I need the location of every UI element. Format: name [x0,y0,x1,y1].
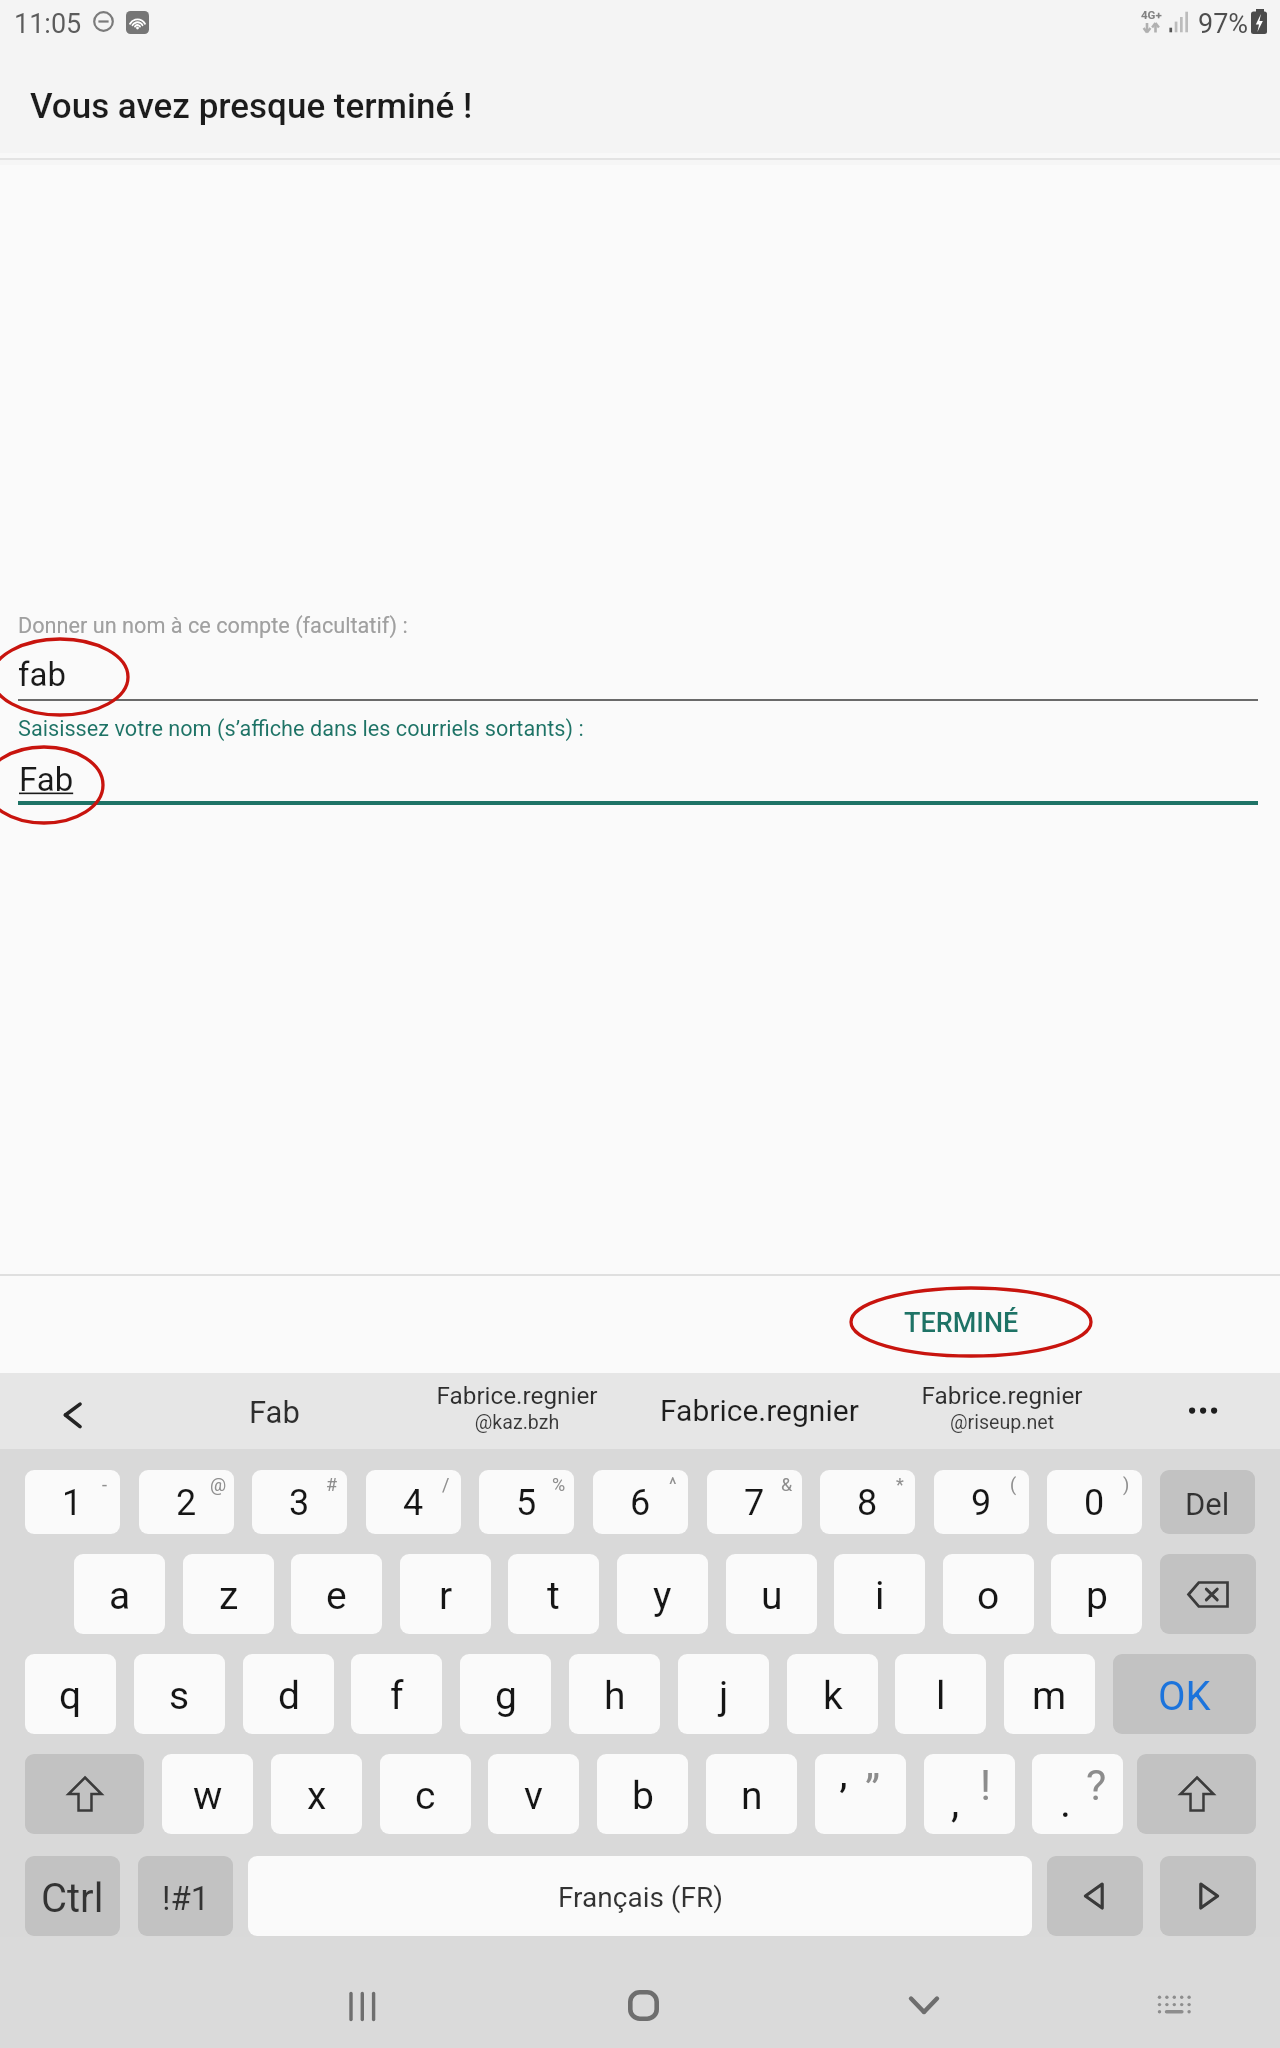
button[interactable]: Recent apps [302,1950,422,2048]
button[interactable]: Backspace [1160,1554,1256,1634]
button[interactable]: Shift [1137,1754,1256,1834]
staticText: Donner un nom à ce compte (facultatif) : [18,613,408,638]
button[interactable]: Vous avez presque terminé ! [0,57,1280,156]
button[interactable]: 1 [25,1470,120,1534]
button[interactable]: ’ [815,1754,906,1834]
button[interactable]: y [617,1554,708,1634]
staticText: 6 [630,1482,651,1524]
button[interactable]: 9 [934,1470,1029,1534]
staticText: n [741,1773,763,1819]
staticText: u [761,1573,783,1619]
staticText: 8 [857,1482,878,1524]
staticText: 11:05 [14,8,82,40]
staticText: @ [210,1474,227,1495]
button[interactable]: 8 [820,1470,915,1534]
button[interactable]: o [943,1554,1034,1634]
button[interactable]: k [787,1654,878,1734]
button[interactable]: p [1051,1554,1142,1634]
button[interactable]: l [895,1654,986,1734]
button[interactable]: Fabrice.regnier [436,1381,598,1443]
button[interactable]: s [134,1654,225,1734]
staticText: 4G+ [1141,8,1162,21]
button[interactable]: Shift [25,1754,144,1834]
button[interactable]: e [291,1554,382,1634]
button[interactable]: v [488,1754,579,1834]
button[interactable]: r [400,1554,491,1634]
button[interactable]: 4 [366,1470,461,1534]
button[interactable]: . [1032,1754,1123,1834]
button[interactable]: h [569,1654,660,1734]
button[interactable]: x [271,1754,362,1834]
staticText: d [278,1673,300,1719]
staticText: ( [1010,1474,1017,1495]
staticText: p [1086,1573,1108,1619]
staticText: e [326,1573,347,1619]
staticText: k [823,1673,843,1719]
button[interactable]: Hide keyboard [864,1950,984,2048]
button[interactable]: Previous suggestions [42,1379,102,1443]
staticText: 4 [403,1482,424,1524]
staticText: Saisissez votre nom (s’affiche dans les … [18,716,584,741]
button[interactable]: 7 [707,1470,802,1534]
button[interactable]: More options [1173,1379,1233,1443]
staticText: ! [980,1760,992,1810]
button[interactable]: 5 [479,1470,574,1534]
staticText: fab [18,655,66,694]
button[interactable]: Change keyboard [1114,1950,1234,2048]
button[interactable]: t [508,1554,599,1634]
staticText: 2 [176,1482,197,1524]
button[interactable]: Fab [205,1379,347,1443]
button[interactable]: d [243,1654,334,1734]
button[interactable]: 2 [139,1470,234,1534]
staticText: x [307,1773,327,1819]
staticText: i [875,1573,885,1619]
button[interactable]: q [25,1654,116,1734]
staticText: - [102,1474,107,1495]
button[interactable]: j [678,1654,769,1734]
staticText: Ctrl [41,1875,104,1922]
staticText: m [1032,1673,1067,1719]
button[interactable]: z [183,1554,274,1634]
button[interactable]: Fabrice.regnier [635,1379,885,1443]
button[interactable]: g [460,1654,551,1734]
staticText: & [781,1474,793,1495]
button[interactable]: w [162,1754,253,1834]
button[interactable]: b [597,1754,688,1834]
button[interactable]: TERMINÉ [866,1288,1056,1358]
staticText: o [977,1573,1000,1619]
button[interactable]: m [1004,1654,1095,1734]
button[interactable]: 6 [593,1470,688,1534]
button[interactable]: f [351,1654,442,1734]
button[interactable]: Home [583,1950,703,2048]
button[interactable]: i [834,1554,925,1634]
staticText: h [604,1673,626,1719]
staticText: c [415,1773,436,1819]
button[interactable]: Move cursor left [1047,1856,1143,1936]
staticText: ’ [839,1776,848,1825]
staticText: / [442,1474,450,1495]
button[interactable]: Del [1160,1470,1255,1534]
staticText: 3 [289,1482,310,1524]
button[interactable]: OK [1113,1654,1256,1734]
staticText: w [193,1773,223,1819]
button[interactable]: Fabrice.regnier [921,1381,1083,1443]
button[interactable]: 3 [252,1470,347,1534]
staticText: v [524,1773,543,1819]
button[interactable]: Français (FR) [248,1856,1032,1936]
staticText: Fab [19,760,74,799]
staticText: Fabrice.regnier [436,1381,598,1409]
button[interactable]: u [726,1554,817,1634]
button[interactable]: a [74,1554,165,1634]
staticText: g [495,1673,517,1719]
button[interactable]: c [380,1754,471,1834]
staticText: s [169,1673,190,1719]
staticText: . [1060,1778,1072,1827]
button[interactable]: , [924,1754,1015,1834]
staticText: ” [865,1766,881,1815]
button[interactable]: Move cursor right [1160,1856,1256,1936]
staticText: @riseup.net [921,1411,1083,1434]
button[interactable]: n [706,1754,797,1834]
button[interactable]: !#1 [138,1856,233,1936]
button[interactable]: 0 [1047,1470,1142,1534]
button[interactable]: Ctrl [25,1856,120,1936]
